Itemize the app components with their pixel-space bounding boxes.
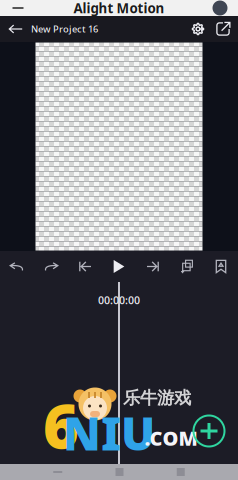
staticText: 6 [43,384,79,466]
staticText: New Project 16 [31,23,98,35]
staticText: Alight Motion [73,0,164,17]
button[interactable]: Play [102,251,136,282]
staticText: .COM [144,425,197,451]
button[interactable]: Add layer [170,251,204,282]
button[interactable]: Export [208,16,238,42]
button[interactable]: Skip to end [136,251,170,282]
staticText: 乐牛游戏 [123,387,191,409]
staticText: NIU [63,403,155,463]
button[interactable]: Menu [0,0,36,16]
button[interactable]: New Project 16 [31,16,98,42]
button[interactable]: Account [202,0,238,16]
button[interactable]: Bookmark [204,251,238,282]
button[interactable]: Undo [0,251,34,282]
button[interactable]: Project settings [188,16,208,42]
button[interactable]: Back [0,16,31,42]
staticText: 00:00:00 [98,293,140,307]
button[interactable]: Skip to start [68,251,102,282]
button[interactable]: Redo [34,251,68,282]
